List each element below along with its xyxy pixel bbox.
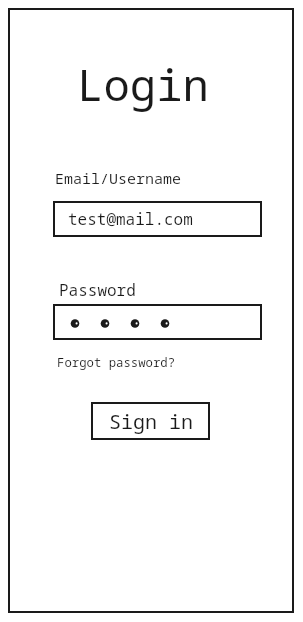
staticText: Password <box>59 279 136 301</box>
button[interactable]: Sign in <box>91 402 210 440</box>
staticText: Login <box>77 54 209 114</box>
staticText: Sign in <box>109 408 193 435</box>
staticText: Email/Username <box>55 168 182 188</box>
staticText: test@mail.com <box>68 208 193 230</box>
staticText: Forgot password? <box>57 354 176 371</box>
button[interactable]: Email or username field <box>53 201 262 237</box>
button[interactable]: Password field <box>53 304 262 340</box>
button[interactable]: Forgot password? <box>57 349 180 376</box>
